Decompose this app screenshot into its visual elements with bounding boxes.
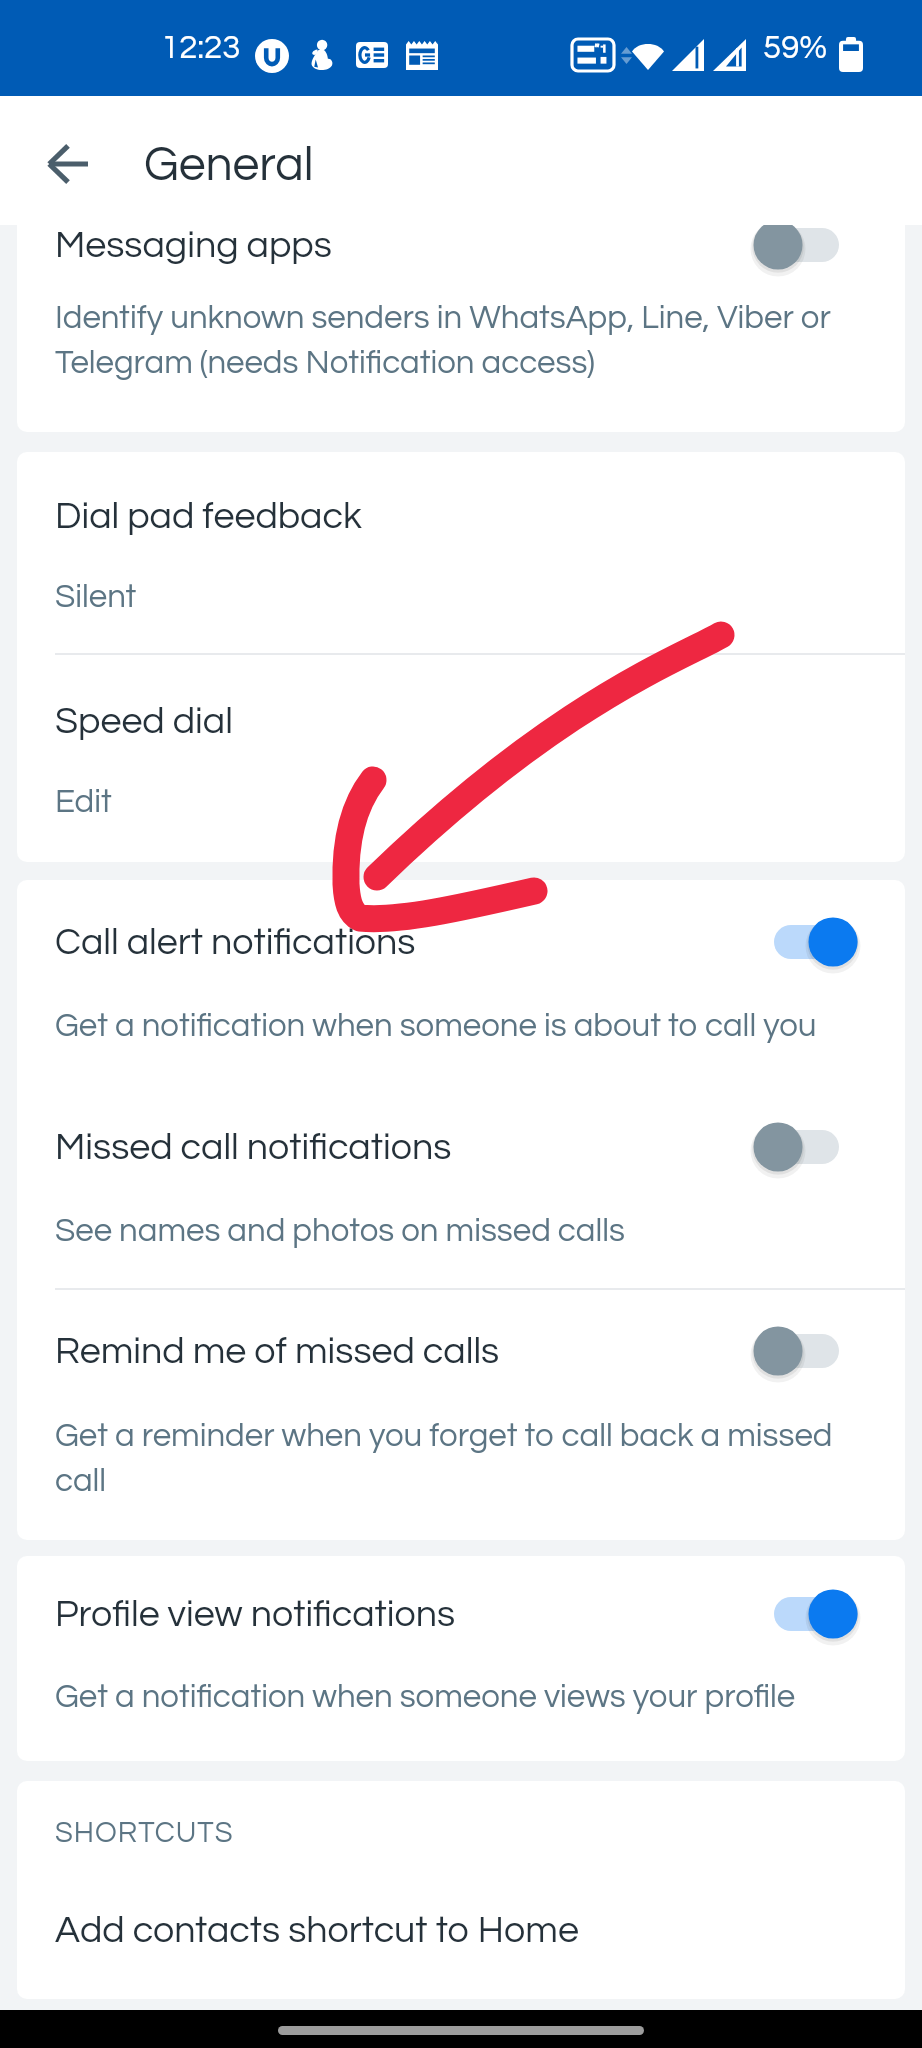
- staticText: Speed dial: [55, 702, 233, 741]
- staticText: See names and photos on missed calls: [55, 1214, 845, 1248]
- staticText: General: [144, 141, 314, 190]
- staticText: SHORTCUTS: [55, 1818, 234, 1848]
- staticText: Get a reminder when you forget to call b…: [55, 1419, 855, 1498]
- staticText: Edit: [55, 785, 845, 819]
- staticText: Get a notification when someone is about…: [55, 1009, 845, 1043]
- button[interactable]: Missed call notifications: [17, 1080, 905, 1288]
- button[interactable]: Add contacts shortcut to Home: [17, 1881, 905, 1999]
- button[interactable]: Call alert notifications: [17, 880, 905, 1080]
- staticText: 12:23: [161, 31, 241, 65]
- button[interactable]: Messaging apps: [17, 225, 905, 432]
- staticText: Remind me of missed calls: [55, 1332, 500, 1371]
- staticText: Call alert notifications: [55, 923, 416, 962]
- staticText: Silent: [55, 580, 845, 614]
- button[interactable]: Speed dial: [17, 655, 905, 862]
- staticText: Get a notification when someone views yo…: [55, 1680, 845, 1714]
- staticText: Add contacts shortcut to Home: [55, 1911, 579, 1950]
- staticText: Messaging apps: [55, 226, 332, 265]
- staticText: Identify unknown senders in WhatsApp, Li…: [55, 301, 855, 380]
- staticText: Missed call notifications: [55, 1128, 452, 1167]
- button[interactable]: Remind me of missed calls: [17, 1290, 905, 1540]
- button[interactable]: Dial pad feedback: [17, 452, 905, 653]
- button[interactable]: Back: [24, 120, 112, 208]
- button[interactable]: Profile view notifications: [17, 1556, 905, 1761]
- staticText: Dial pad feedback: [55, 497, 362, 536]
- staticText: Profile view notifications: [55, 1595, 456, 1634]
- staticText: 59%: [763, 31, 828, 65]
